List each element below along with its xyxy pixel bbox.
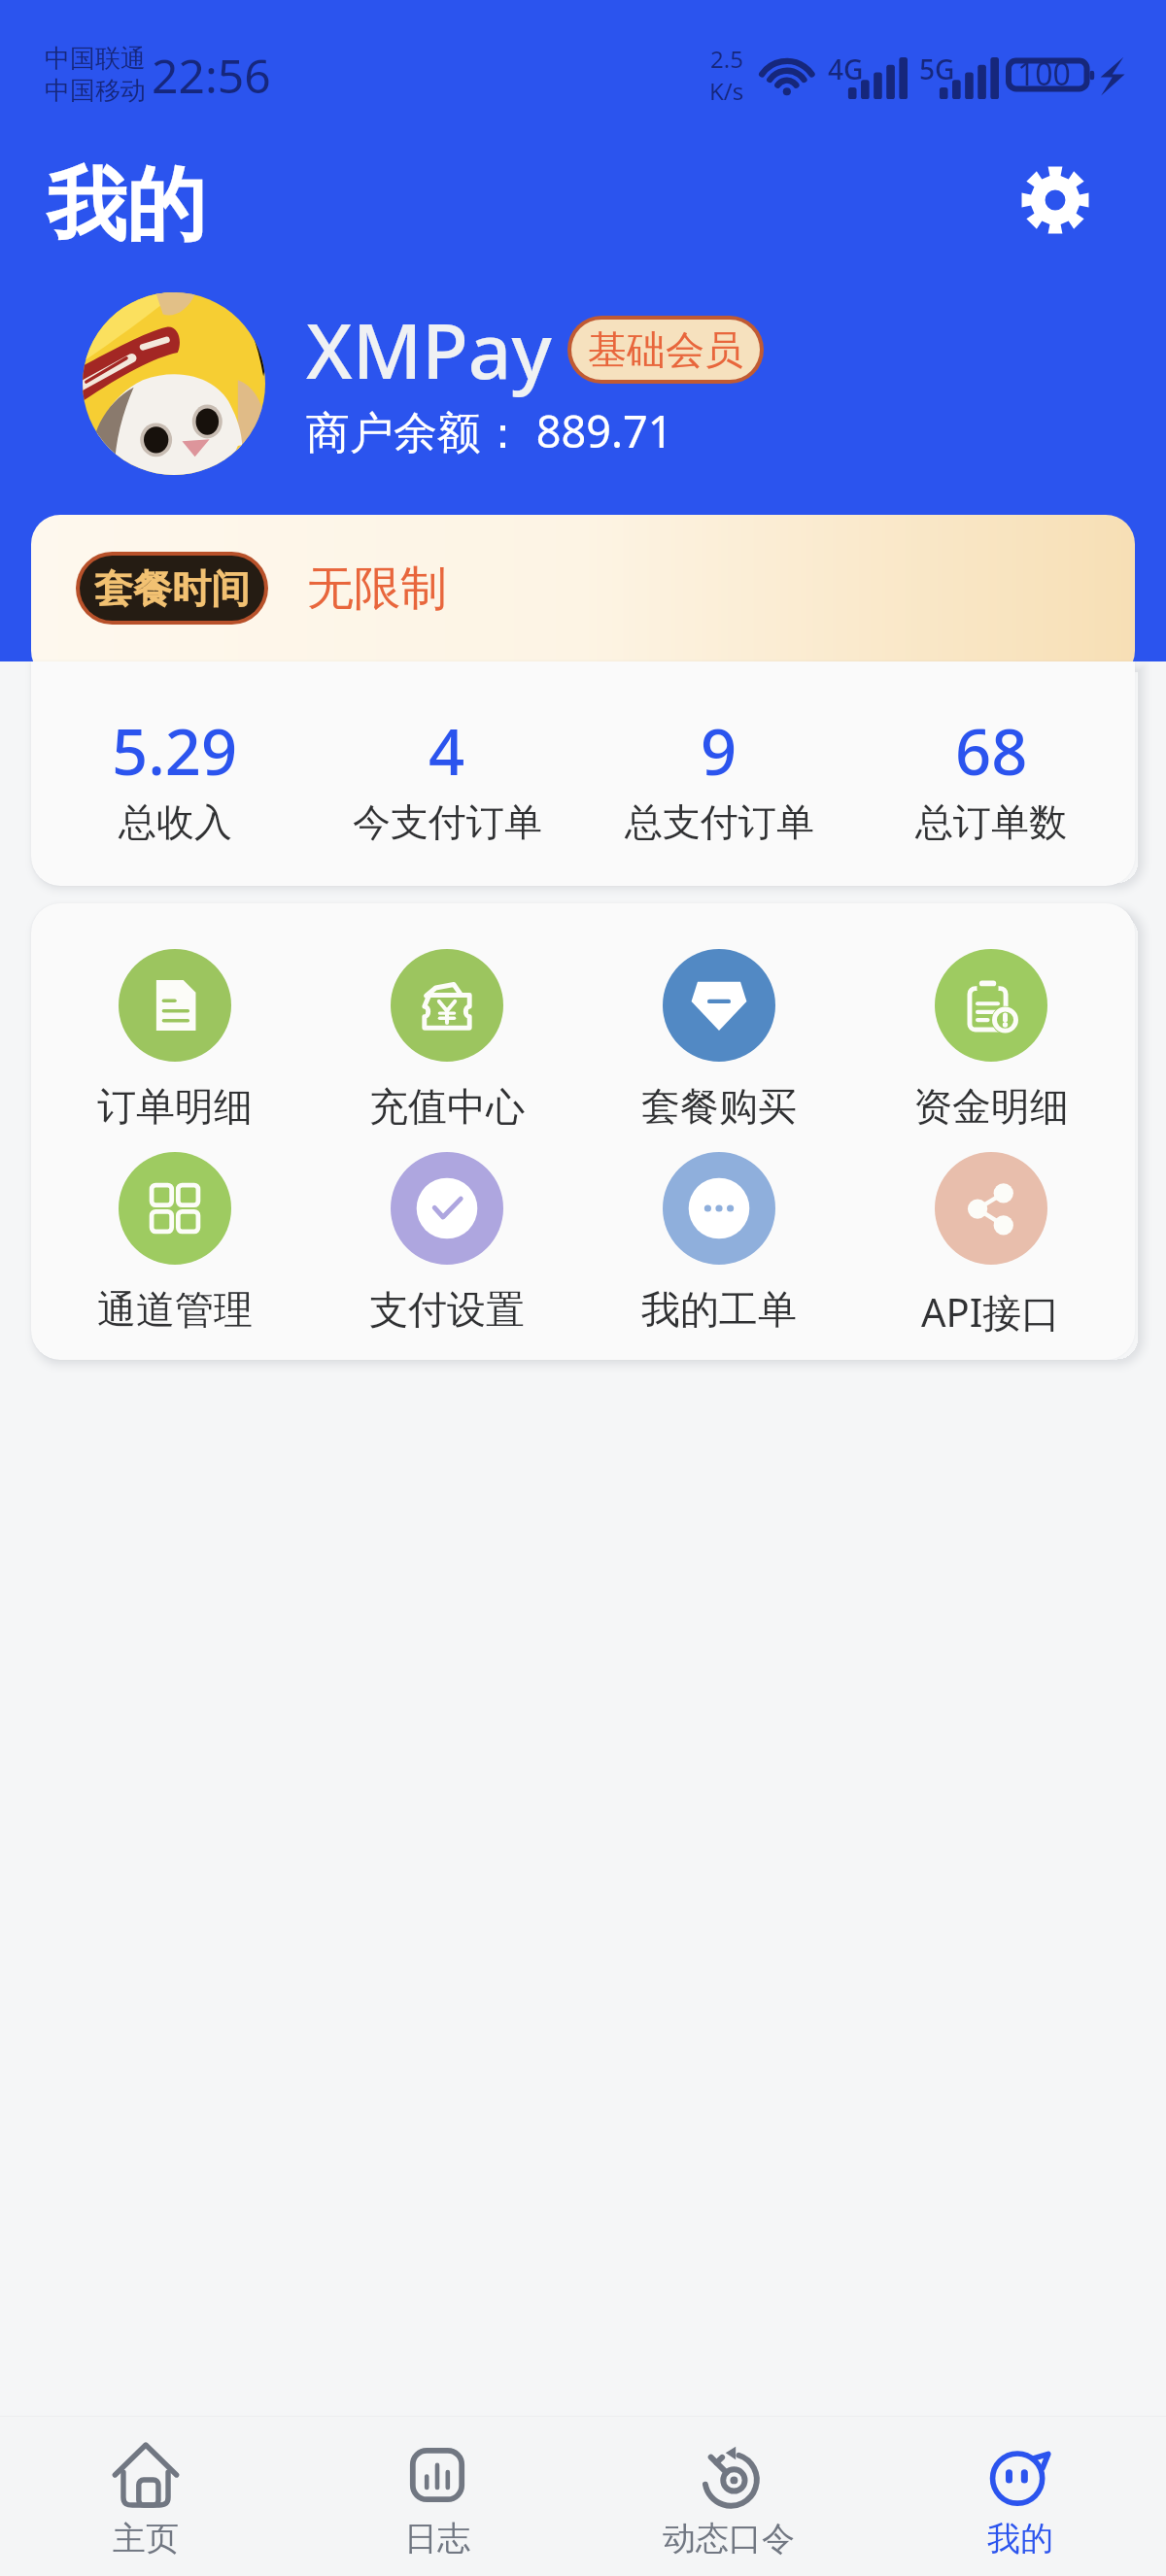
staticText: 资金明细 [913,1082,1069,1131]
staticText: XMPay [306,298,552,401]
staticText: 日志 [404,2518,470,2559]
staticText: 总收入 [119,798,232,846]
staticText: 100 [1017,52,1071,95]
button[interactable]: 日志 [291,2417,583,2559]
button[interactable]: 资金明细 [855,949,1127,1131]
button[interactable]: 4 [311,708,583,846]
staticText: 22:56 [152,44,271,107]
staticText: 5G [919,51,955,87]
staticText: API接口 [921,1285,1061,1339]
button[interactable]: 动态口令 [583,2417,874,2559]
button[interactable]: 68 [855,708,1127,846]
staticText: 商户余额： 889.71 [306,401,673,460]
staticText: 68 [955,708,1028,795]
staticText: 4G [828,51,864,87]
button[interactable]: 套餐时间 [80,556,264,621]
staticText: 9 [701,708,737,795]
button[interactable]: 主页 [0,2417,291,2559]
staticText: 我的工单 [641,1285,797,1334]
staticText: 动态口令 [663,2518,795,2559]
staticText: 主页 [113,2518,179,2559]
button[interactable]: API接口 [855,1152,1127,1339]
button[interactable]: 订单明细 [39,949,311,1131]
staticText: 我的 [47,155,206,255]
staticText: 2.5 [710,43,743,75]
staticText: 支付设置 [369,1285,525,1334]
button[interactable]: 基础会员 [571,320,760,380]
staticText: 套餐购买 [641,1082,797,1131]
button[interactable]: 通道管理 [39,1152,311,1334]
staticText: K/s [709,75,744,107]
staticText: 订单明细 [97,1082,253,1131]
staticText: 充值中心 [369,1082,525,1131]
button[interactable]: 我的工单 [583,1152,855,1334]
staticText: 今支付订单 [353,798,542,846]
staticText: 套餐时间 [94,564,250,613]
staticText: 我的 [987,2518,1053,2559]
staticText: 总支付订单 [625,798,814,846]
staticText: 中国联通 [45,43,146,75]
staticText: 无限制 [307,559,447,618]
staticText: 通道管理 [97,1285,253,1334]
button[interactable]: 支付设置 [311,1152,583,1334]
staticText: 总订单数 [915,798,1067,846]
button[interactable]: 9 [583,708,855,846]
button[interactable]: 我的 [874,2417,1166,2559]
staticText: 中国移动 [45,75,146,107]
button[interactable]: 5.29 [39,708,311,846]
button[interactable]: 充值中心 [311,949,583,1131]
staticText: 4 [429,708,465,795]
staticText: 基础会员 [588,325,743,374]
button[interactable]: Settings [1018,163,1092,237]
button[interactable]: 套餐购买 [583,949,855,1131]
staticText: 5.29 [112,708,238,795]
